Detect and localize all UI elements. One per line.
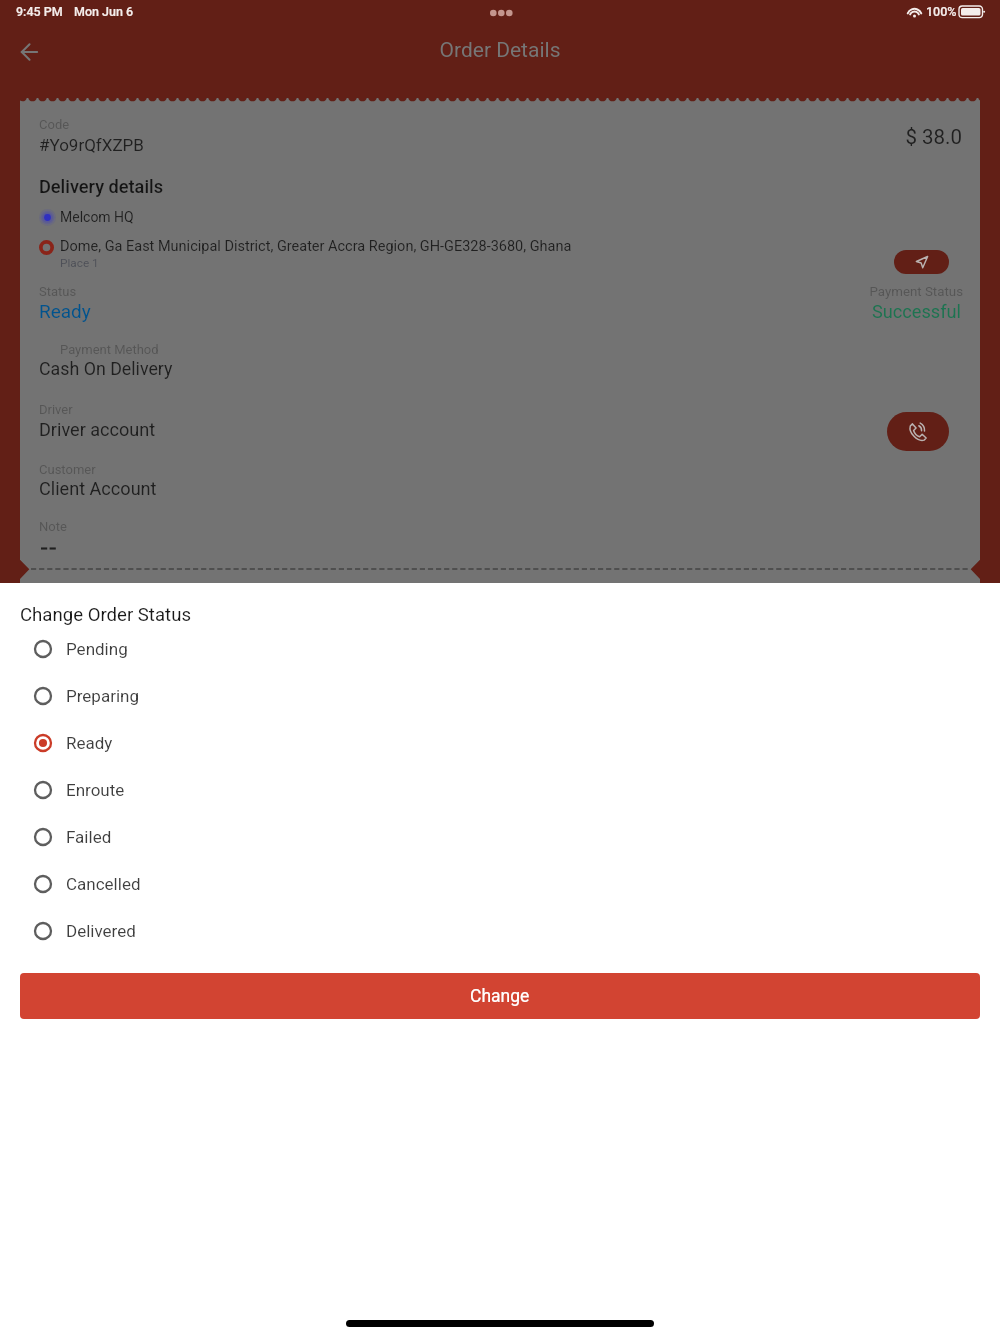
- button[interactable]: Pending: [0, 625, 1000, 672]
- button[interactable]: Ready: [0, 719, 1000, 766]
- staticText: Delivery details: [39, 176, 164, 197]
- staticText: Order Details: [0, 38, 1000, 63]
- button[interactable]: Failed: [0, 813, 1000, 860]
- staticText: Ready: [66, 733, 113, 753]
- staticText: 9:45 PM: [16, 4, 63, 19]
- button[interactable]: Preparing: [0, 672, 1000, 719]
- staticText: Mon Jun 6: [74, 4, 134, 19]
- staticText: Customer: [39, 462, 96, 477]
- staticText: 100%: [926, 4, 957, 19]
- button[interactable]: Cancelled: [0, 860, 1000, 907]
- staticText: Dome, Ga East Municipal District, Greate…: [60, 238, 572, 255]
- staticText: Cancelled: [66, 874, 141, 894]
- button[interactable]: Delivered: [0, 907, 1000, 954]
- staticText: Status: [39, 284, 77, 299]
- staticText: Code: [39, 117, 70, 132]
- staticText: Successful: [0, 301, 961, 322]
- staticText: Pending: [66, 639, 128, 659]
- staticText: Place 1: [60, 256, 99, 270]
- staticText: Payment Status: [0, 284, 963, 300]
- staticText: Failed: [66, 827, 112, 847]
- button[interactable]: Change: [20, 973, 980, 1019]
- staticText: #Yo9rQfXZPB: [39, 135, 144, 155]
- staticText: Delivered: [66, 921, 136, 941]
- staticText: Payment Method: [60, 342, 159, 357]
- button[interactable]: Enroute: [0, 766, 1000, 813]
- button[interactable]: Call driver: [887, 412, 949, 451]
- staticText: Enroute: [66, 780, 125, 800]
- staticText: Melcom HQ: [60, 209, 134, 225]
- staticText: Change: [470, 986, 530, 1007]
- staticText: Driver: [39, 402, 73, 417]
- button[interactable]: Back: [14, 35, 48, 69]
- staticText: Ready: [39, 300, 91, 322]
- staticText: Preparing: [66, 686, 139, 706]
- button[interactable]: Navigate to delivery location: [894, 250, 949, 274]
- staticText: Client Account: [39, 478, 157, 499]
- staticText: Note: [39, 519, 67, 534]
- staticText: Driver account: [39, 419, 156, 440]
- staticText: $ 38.0: [0, 125, 962, 149]
- staticText: Cash On Delivery: [39, 358, 173, 379]
- staticText: Change Order Status: [20, 604, 191, 626]
